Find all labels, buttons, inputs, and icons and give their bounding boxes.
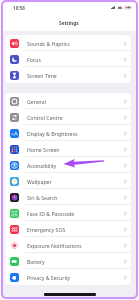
button[interactable]: Accessibility [5, 157, 131, 173]
staticText: Accessibility [27, 162, 57, 169]
button[interactable]: Siri & Search [5, 189, 131, 205]
button[interactable]: Wallpaper [5, 173, 131, 189]
staticText: 10:58 [13, 5, 25, 11]
staticText: Control Centre [27, 114, 63, 121]
button[interactable]: Privacy & Security [5, 269, 131, 285]
button[interactable]: Face ID & Passcode [5, 205, 131, 221]
button[interactable]: Emergency SOS [5, 221, 131, 237]
staticText: Focus [27, 56, 42, 63]
staticText: Wallpaper [27, 178, 52, 185]
button[interactable]: Exposure Notifications [5, 237, 131, 253]
staticText: Home Screen [27, 146, 60, 153]
staticText: Privacy & Security [27, 274, 71, 281]
button[interactable]: Sounds & Haptics [5, 35, 131, 51]
button[interactable]: Battery [5, 253, 131, 269]
button[interactable]: Screen Time [5, 67, 131, 83]
staticText: Battery [27, 258, 45, 265]
button[interactable]: Control Centre [5, 109, 131, 125]
button[interactable]: Focus [5, 51, 131, 67]
button[interactable]: Display & Brightness [5, 125, 131, 141]
button[interactable]: Home Screen [5, 141, 131, 157]
staticText: Face ID & Passcode [27, 210, 75, 217]
staticText: Settings [59, 20, 79, 27]
staticText: Screen Time [27, 72, 57, 79]
staticText: Exposure Notifications [27, 242, 82, 249]
staticText: Emergency SOS [27, 226, 66, 233]
staticText: Sounds & Haptics [27, 40, 70, 47]
button[interactable]: General [5, 93, 131, 109]
staticText: General [27, 98, 47, 105]
staticText: Display & Brightness [27, 130, 78, 137]
staticText: Siri & Search [27, 194, 58, 201]
